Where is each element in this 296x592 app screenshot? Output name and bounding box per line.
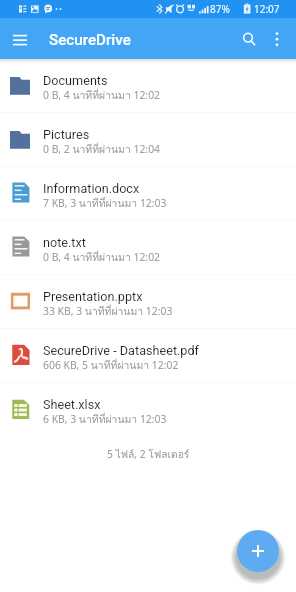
staticText: Information.docx <box>43 181 140 196</box>
staticText: 6 KB, 3 นาทีที่ผ่านมา 12:03 <box>43 411 167 428</box>
staticText: 87% <box>210 2 230 16</box>
staticText: Pictures <box>43 127 90 142</box>
button[interactable]: Menu <box>3 22 37 56</box>
staticText: SecureDrive <box>49 31 131 49</box>
staticText: 0 B, 4 นาทีที่ผ่านมา 12:02 <box>43 87 161 104</box>
staticText: 0 B, 2 นาทีที่ผ่านมา 12:04 <box>43 141 161 158</box>
staticText: 33 KB, 3 นาทีที่ผ่านมา 12:03 <box>43 303 173 320</box>
button[interactable]: Add <box>237 530 279 572</box>
staticText: 7 KB, 3 นาทีที่ผ่านมา 12:03 <box>43 195 167 212</box>
staticText: Sheet.xlsx <box>43 397 101 412</box>
button[interactable]: Search <box>232 22 266 56</box>
staticText: Documents <box>43 73 108 88</box>
button[interactable]: Sheet.xlsx <box>0 383 296 436</box>
button[interactable]: More options <box>260 22 294 56</box>
button[interactable]: SecureDrive - Datasheet.pdf <box>0 329 296 382</box>
staticText: 0 B, 4 นาทีที่ผ่านมา 12:02 <box>43 249 161 266</box>
staticText: 5 ไฟล์, 2 โฟลเดอร์ <box>107 446 190 462</box>
button[interactable]: note.txt <box>0 221 296 274</box>
button[interactable]: Pictures <box>0 113 296 166</box>
staticText: 606 KB, 5 นาทีที่ผ่านมา 12:02 <box>43 357 179 374</box>
button[interactable]: Information.docx <box>0 167 296 220</box>
staticText: Presentation.pptx <box>43 289 143 304</box>
staticText: note.txt <box>43 235 86 250</box>
staticText: 12:07 <box>254 2 280 16</box>
staticText: SecureDrive - Datasheet.pdf <box>43 343 199 358</box>
button[interactable]: Presentation.pptx <box>0 275 296 328</box>
button[interactable]: Documents <box>0 59 296 112</box>
